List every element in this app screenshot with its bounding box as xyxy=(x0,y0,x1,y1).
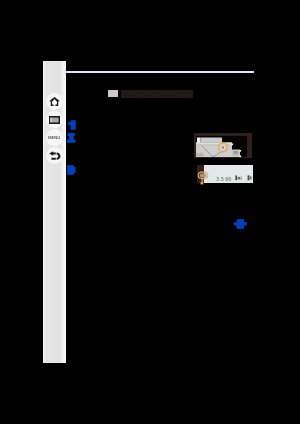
button[interactable]: Contents xyxy=(46,111,63,128)
staticText: MENU xyxy=(48,135,61,140)
button[interactable]: Step 2 xyxy=(67,133,76,143)
button[interactable]: Home xyxy=(46,93,63,110)
button[interactable]: Back xyxy=(46,147,63,164)
button[interactable]: Step 3 xyxy=(67,165,76,175)
button[interactable]: Step 4 xyxy=(234,219,247,229)
button[interactable]: Menu xyxy=(46,129,63,146)
button[interactable]: Step 1 xyxy=(68,120,77,130)
staticText: 3.5 60 xyxy=(216,175,232,182)
